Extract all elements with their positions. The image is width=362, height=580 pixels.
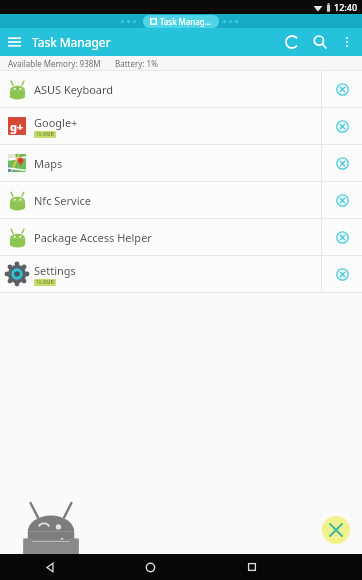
staticText: ASUS Keyboard [34,82,114,97]
staticText: Nfc Service [34,193,91,208]
staticText: 16.8MB [36,131,54,138]
button[interactable]: Search [306,28,334,56]
button[interactable]: ASUS Keyboard [0,71,362,107]
button[interactable]: Open navigation drawer [0,28,28,56]
staticText: Task Manager [32,34,111,50]
button[interactable]: Close ASUS Keyboard [322,71,362,107]
staticText: g+ [10,119,24,134]
staticText: 16.8MB [36,279,54,286]
button[interactable]: Task Manag... [143,15,219,28]
button[interactable]: Recent apps [201,554,302,580]
staticText: Settings [34,263,76,278]
button[interactable]: Refresh [278,28,306,56]
button[interactable]: Package Access Helper [0,219,362,255]
staticText: Maps [34,156,63,171]
button[interactable]: Close Google+ [322,108,362,144]
button[interactable]: More options [334,29,360,55]
button[interactable]: Maps [0,145,362,181]
button[interactable]: g+ [0,108,362,144]
staticText: 12:40 [334,1,358,13]
staticText: Package Access Helper [34,230,152,245]
button[interactable]: Nfc Service [0,182,362,218]
button[interactable]: Close Package Access Helper [322,219,362,255]
button[interactable]: Close all apps [322,516,350,544]
button[interactable]: Close Nfc Service [322,182,362,218]
staticText: Battery: 1% [115,58,158,69]
staticText: Available Memory: 938M [8,58,101,69]
button[interactable]: Back [0,554,100,580]
button[interactable]: Close Maps [322,145,362,181]
button[interactable]: Home [100,554,201,580]
button[interactable]: Settings [0,256,362,292]
staticText: Task Manag... [160,16,212,27]
staticText: Google+ [34,115,78,130]
button[interactable]: Close Settings [322,256,362,292]
